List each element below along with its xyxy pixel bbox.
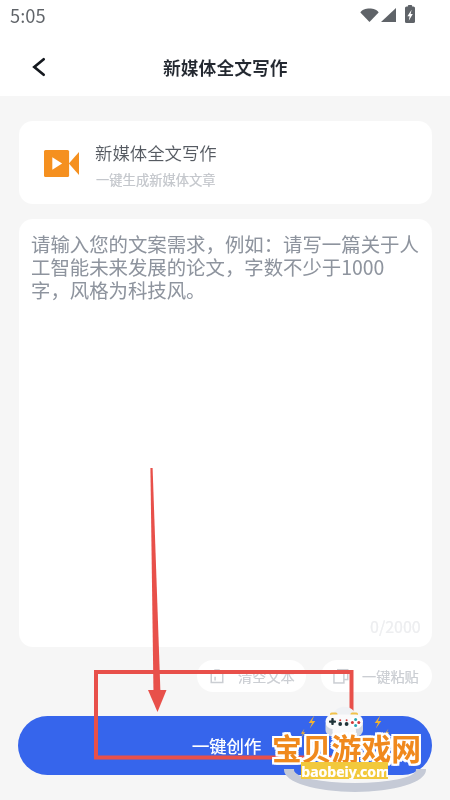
staticText: 5:05 [10, 2, 46, 28]
staticText: 宝贝游戏网 [272, 727, 421, 770]
staticText: 一键创作 [192, 733, 262, 758]
staticText: baobeiy.com [301, 762, 388, 779]
staticText: 宝贝游戏网 [274, 725, 423, 768]
staticText: 宝贝游戏网 [274, 727, 423, 770]
staticText: 宝贝游戏网 [270, 727, 419, 770]
staticText: 清空文本 [238, 666, 295, 687]
staticText: 宝贝游戏网 [270, 723, 419, 766]
staticText: 0/2000 [370, 614, 421, 637]
staticText: 一键生成新媒体文章 [96, 170, 216, 189]
staticText: 新媒体全文写作 [95, 140, 217, 165]
staticText: 一键粘贴 [362, 666, 419, 687]
button[interactable]: 新媒体全文写作 [19, 121, 432, 204]
staticText: 宝贝游戏网 [274, 723, 423, 766]
staticText: 宝贝游戏网 [272, 723, 421, 766]
button[interactable]: 一键创作 [18, 716, 432, 775]
staticText: 宝贝游戏网 [270, 725, 419, 768]
button[interactable]: Back [19, 47, 59, 87]
button[interactable]: 一键粘贴 [321, 660, 432, 692]
button[interactable]: 清空文本 [197, 660, 306, 692]
button[interactable]: 请输入您的文案需求，例如：请写一篇关于人工智能未来发展的论文，字数不少于1000… [19, 219, 432, 647]
staticText: 新媒体全文写作 [163, 54, 288, 80]
staticText: 宝贝游戏网 [272, 725, 421, 768]
staticText: 请输入您的文案需求，例如：请写一篇关于人工智能未来发展的论文，字数不少于1000… [31, 229, 420, 303]
